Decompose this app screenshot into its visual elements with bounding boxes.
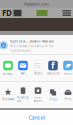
- staticText: Twitter: [63, 72, 72, 75]
- button[interactable]: Cancel: [0, 110, 73, 125]
- staticText: Notes: [34, 72, 42, 75]
- staticText: Mail: [20, 72, 25, 75]
- staticText: Bookmark: [2, 97, 14, 101]
- button[interactable]: Print: [60, 88, 73, 102]
- staticText: Copy: [49, 97, 56, 101]
- button[interactable]: Reading List: [15, 88, 30, 102]
- button[interactable]: Home Screen: [30, 88, 45, 102]
- staticText: Home Screen: [33, 96, 42, 103]
- button[interactable]: Mail: [15, 60, 30, 76]
- button[interactable]: Copy: [45, 88, 60, 102]
- staticText: flightdeck.com: [24, 1, 49, 7]
- button[interactable]: f: [45, 60, 60, 76]
- staticText: FD: [2, 8, 12, 18]
- button[interactable]: Message: [0, 60, 15, 76]
- staticText: flightdeck.com: [10, 49, 30, 52]
- staticText: Cancel: [28, 114, 44, 121]
- staticText: Message: [2, 72, 13, 75]
- button[interactable]: Notes: [30, 60, 45, 76]
- staticText: Print: [64, 97, 71, 101]
- staticText: f: [51, 59, 55, 71]
- button[interactable]: Twitter: [60, 60, 73, 76]
- staticText: Flight Deck — Aviation News and: [10, 40, 54, 43]
- staticText: Facebook: [47, 72, 59, 75]
- staticText: Reading List: [17, 96, 29, 103]
- staticText: Fleet Updates from Around the: [10, 44, 54, 48]
- button[interactable]: Bookmark: [0, 88, 15, 102]
